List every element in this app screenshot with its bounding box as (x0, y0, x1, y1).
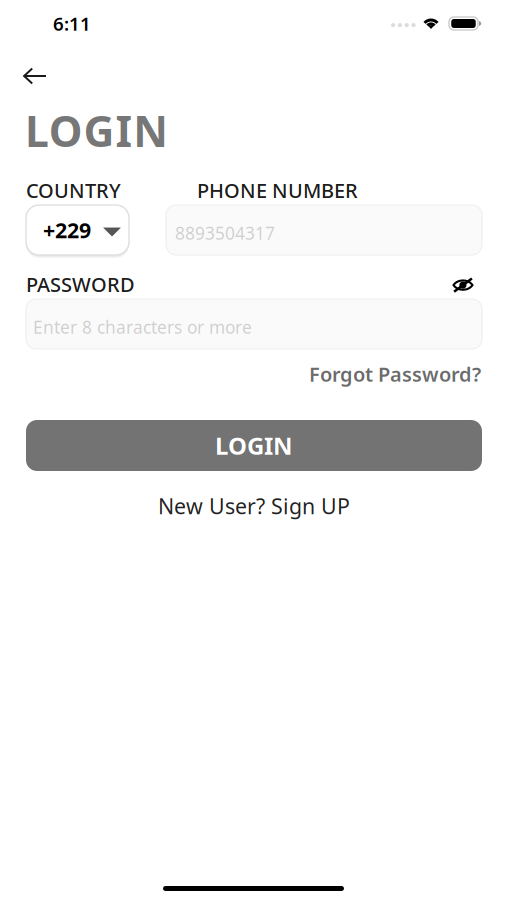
staticText: PASSWORD (26, 271, 135, 298)
staticText: +229 (43, 216, 91, 244)
staticText: 6:11 (53, 11, 91, 36)
button[interactable]: Back (13, 56, 57, 96)
staticText: COUNTRY (26, 177, 121, 204)
button[interactable]: New User? Sign UP (26, 493, 482, 519)
button[interactable]: Forgot Password? (301, 360, 481, 388)
button[interactable]: LOGIN (26, 420, 482, 471)
button[interactable]: Show password (443, 268, 483, 302)
staticText: LOGIN (215, 430, 293, 461)
staticText: Enter 8 characters or more (33, 315, 252, 338)
staticText: 8893504317 (175, 221, 275, 244)
button[interactable]: Country code +229 (26, 205, 129, 255)
staticText: PHONE NUMBER (197, 177, 358, 204)
staticText: Forgot Password? (309, 361, 481, 387)
staticText: New User? Sign UP (158, 492, 350, 520)
staticText: LOGIN (25, 102, 168, 159)
